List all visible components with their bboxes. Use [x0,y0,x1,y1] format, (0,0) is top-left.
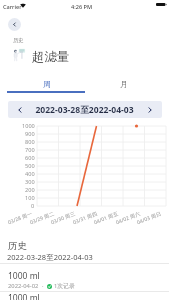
staticText: 历史 [8,240,27,252]
staticText: 月 [120,79,128,89]
staticText: 900 [25,130,35,138]
staticText: 03/28 周一 [7,209,33,225]
button[interactable]: 1000 ml [0,291,169,300]
button[interactable]: 1000 ml [0,264,169,291]
staticText: 200 [25,186,35,194]
button[interactable]: Back [8,18,21,31]
staticText: 400 [25,170,35,178]
staticText: 周 [43,79,51,89]
button[interactable]: Next week [138,101,162,118]
staticText: 1000 [22,122,35,130]
staticText: 03/30 周三 [50,209,76,225]
staticText: 03/29 周二 [29,209,55,225]
staticText: 4:26 PM [71,3,93,11]
staticText: 2022-03-28至2022-04-03 [31,104,138,116]
staticText: 1次记录 [54,282,75,290]
button[interactable]: 月 [85,70,163,92]
staticText: 0 [31,202,35,210]
staticText: 300 [25,178,35,186]
staticText: 04/01 周五 [93,209,119,225]
staticText: 1000 ml [8,270,40,282]
staticText: · [42,282,44,290]
staticText: 800 [25,138,35,146]
staticText: 500 [25,162,35,170]
staticText: 2022-03-28至2022-04-03 [7,252,93,262]
staticText: 历史 [13,37,24,44]
staticText: 超滤量 [32,49,70,65]
staticText: 1000 ml [8,292,40,300]
staticText: 600 [25,154,35,162]
staticText: Carrier [3,3,22,11]
button[interactable]: Previous week [8,101,31,118]
staticText: 04/03 周日 [136,209,162,225]
staticText: 100 [25,194,35,202]
staticText: 2022-04-02 [8,282,39,290]
staticText: 04/02 周六 [115,209,141,225]
button[interactable]: 周 [7,70,85,92]
staticText: 03/31 周四 [72,209,98,225]
staticText: 700 [25,146,35,154]
